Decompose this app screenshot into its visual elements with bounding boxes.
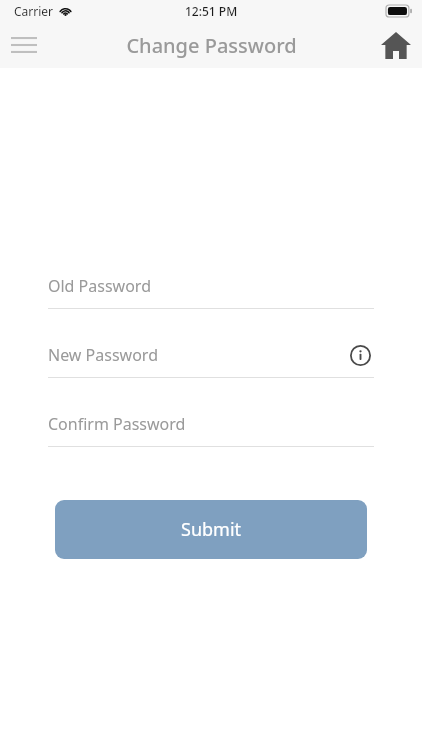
button[interactable]: Home	[370, 22, 422, 68]
button[interactable]: Password requirements info	[346, 341, 374, 369]
staticText: Submit	[181, 517, 242, 542]
staticText: Old Password	[48, 275, 151, 297]
button[interactable]: Menu	[0, 22, 48, 68]
staticText: New Password	[48, 344, 158, 366]
button[interactable]: Old Password	[48, 270, 374, 309]
staticText: 12:51 PM	[185, 3, 238, 19]
staticText: Confirm Password	[48, 413, 186, 435]
button[interactable]: Submit	[55, 500, 367, 559]
button[interactable]: New Password	[48, 339, 374, 378]
staticText: Change Password	[126, 32, 297, 59]
staticText: Carrier	[14, 3, 54, 19]
button[interactable]: Confirm Password	[48, 408, 374, 447]
